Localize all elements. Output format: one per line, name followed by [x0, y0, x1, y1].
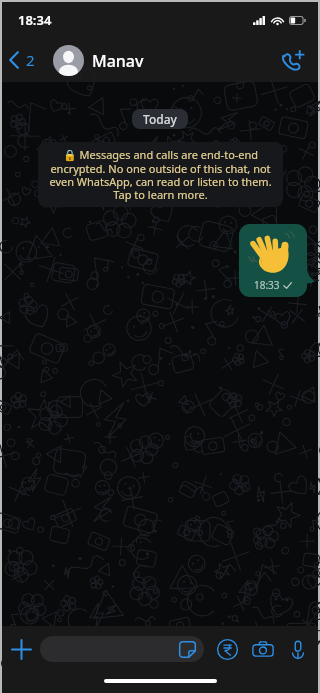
- button[interactable]: 18:33: [239, 224, 307, 297]
- button[interactable]: [40, 636, 204, 662]
- button[interactable]: Today: [132, 109, 188, 129]
- button[interactable]: Voice message: [280, 632, 315, 667]
- staticText: 18:33: [254, 278, 280, 292]
- staticText: Today: [143, 111, 177, 127]
- button[interactable]: Add to call: [271, 39, 313, 81]
- staticText: Manav: [92, 50, 144, 72]
- staticText: 🔒 Messages and calls are end-to-end encr…: [48, 147, 273, 202]
- staticText: 2: [26, 50, 35, 70]
- button[interactable]: 🔒 Messages and calls are end-to-end encr…: [38, 142, 283, 207]
- button[interactable]: Camera: [245, 632, 280, 667]
- button[interactable]: Back: [2, 44, 37, 76]
- button[interactable]: Manav: [53, 45, 271, 76]
- button[interactable]: Attach: [2, 630, 40, 668]
- staticText: 18:34: [18, 11, 52, 29]
- button[interactable]: Payment: [210, 632, 245, 667]
